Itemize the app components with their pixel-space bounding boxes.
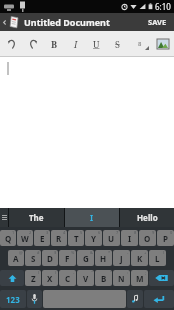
button[interactable]: F	[59, 250, 76, 266]
button[interactable]: T	[68, 230, 84, 246]
button[interactable]: Y	[85, 230, 102, 246]
button[interactable]: A	[8, 250, 24, 266]
button[interactable]: K	[131, 250, 148, 266]
staticText: (	[38, 270, 40, 275]
staticText: O	[144, 233, 151, 244]
button[interactable]: Undo	[0, 31, 22, 56]
staticText: S	[31, 253, 36, 264]
button[interactable]: V	[77, 270, 94, 286]
button[interactable]: Z	[25, 270, 41, 286]
staticText: K	[137, 253, 143, 264]
button[interactable]: Font size	[128, 31, 151, 56]
button[interactable]: Enter	[144, 290, 174, 308]
button[interactable]: Q	[0, 230, 16, 246]
button[interactable]: X	[42, 270, 58, 286]
button[interactable]: Backspace	[149, 270, 174, 286]
button[interactable]: U	[86, 31, 107, 56]
staticText: B	[101, 273, 107, 284]
button[interactable]: W	[17, 230, 33, 246]
staticText: 1	[12, 230, 15, 235]
staticText: 123	[6, 294, 20, 305]
button[interactable]: The	[9, 208, 64, 227]
staticText: 9	[152, 230, 155, 235]
staticText: F	[65, 253, 70, 264]
button[interactable]: N	[113, 270, 130, 286]
button[interactable]: 123	[0, 290, 26, 308]
staticText: 8	[134, 230, 137, 235]
staticText: )	[55, 270, 57, 275]
button[interactable]: P	[157, 230, 174, 246]
staticText: S	[115, 38, 120, 50]
button[interactable]: I	[65, 31, 86, 56]
button[interactable]: H	[95, 250, 112, 266]
button[interactable]: Emoji	[127, 290, 143, 308]
button[interactable]: R	[51, 230, 67, 246]
staticText: 6:10	[155, 1, 171, 12]
button[interactable]: S	[25, 250, 41, 266]
button[interactable]: S	[107, 31, 128, 56]
staticText: R	[56, 233, 62, 244]
staticText: 7	[116, 230, 119, 235]
staticText: %	[71, 250, 75, 255]
staticText: D	[47, 253, 53, 264]
button[interactable]: B	[44, 31, 65, 56]
button[interactable]: L	[149, 250, 166, 266]
staticText: *	[108, 250, 111, 255]
staticText: 4	[63, 230, 66, 235]
button[interactable]: C	[59, 270, 76, 286]
staticText: A	[13, 253, 19, 264]
staticText: -	[127, 250, 129, 255]
button[interactable]: Insert image	[151, 31, 174, 56]
staticText: "	[91, 270, 93, 275]
staticText: I	[74, 38, 78, 50]
button[interactable]: Redo	[22, 31, 44, 56]
staticText: :	[127, 270, 129, 275]
button[interactable]: I	[121, 230, 138, 246]
staticText: C	[65, 273, 71, 284]
staticText: 6	[98, 230, 101, 235]
staticText: M	[136, 273, 144, 284]
button[interactable]: J	[113, 250, 130, 266]
button[interactable]: Hello	[120, 208, 174, 227]
staticText: The	[29, 212, 44, 223]
staticText: Untitled Document	[24, 16, 141, 28]
button[interactable]: G	[77, 250, 94, 266]
staticText: $	[54, 250, 57, 255]
button[interactable]: M	[131, 270, 148, 286]
staticText: 3	[46, 230, 49, 235]
button[interactable]: Voice input	[27, 290, 42, 308]
button[interactable]: Shift	[0, 270, 24, 286]
staticText: H	[100, 253, 107, 264]
button[interactable]: SAVE	[141, 13, 174, 31]
staticText: L	[155, 253, 160, 264]
staticText: Z	[31, 273, 36, 284]
staticText: SAVE	[148, 17, 167, 27]
staticText: 8	[138, 40, 142, 48]
staticText: U	[93, 38, 100, 50]
staticText: N	[118, 273, 125, 284]
staticText: X	[47, 273, 53, 284]
staticText: Y	[91, 233, 97, 244]
staticText: '	[110, 270, 111, 275]
staticText: E	[40, 233, 45, 244]
button[interactable]: I	[65, 208, 119, 227]
button[interactable]: U	[103, 230, 120, 246]
staticText: I	[128, 233, 132, 244]
staticText: 0	[170, 230, 173, 235]
staticText: ;	[145, 270, 147, 275]
staticText: 2	[29, 230, 32, 235]
button[interactable]: Suggestions menu	[0, 208, 8, 227]
staticText: W	[21, 233, 29, 244]
button[interactable]: B	[95, 270, 112, 286]
staticText: V	[83, 273, 89, 284]
button[interactable]: E	[34, 230, 50, 246]
staticText: Q	[5, 233, 12, 244]
button[interactable]: D	[42, 250, 58, 266]
staticText: I	[90, 212, 94, 223]
button[interactable]: O	[139, 230, 156, 246]
staticText: &	[90, 250, 93, 255]
staticText: (	[163, 250, 165, 255]
button[interactable]: Back	[0, 13, 9, 31]
staticText: +	[144, 250, 147, 255]
